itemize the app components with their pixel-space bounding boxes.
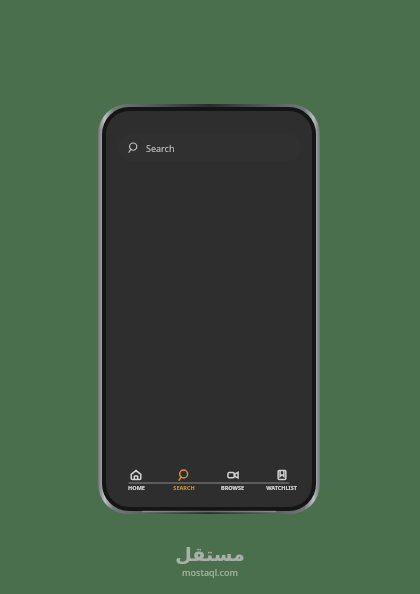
other: Watchlist [276,469,288,481]
staticText: BROWSE [221,484,244,491]
staticText: Search [146,142,175,154]
staticText: mostaql.com [182,566,238,578]
staticText: SEARCH [173,484,195,491]
other: Search [178,469,190,481]
other: Search [128,142,139,153]
staticText: مستقل [175,543,245,565]
button[interactable]: Watchlist [257,463,306,503]
staticText: HOME [128,484,145,491]
staticText: WATCHLIST [266,484,297,491]
other: Home [130,469,142,481]
button[interactable]: Browse [208,463,257,503]
button[interactable]: Search [160,463,208,503]
other: Browse [227,469,239,481]
button[interactable]: Home [112,463,160,503]
button[interactable]: Search [117,134,301,161]
